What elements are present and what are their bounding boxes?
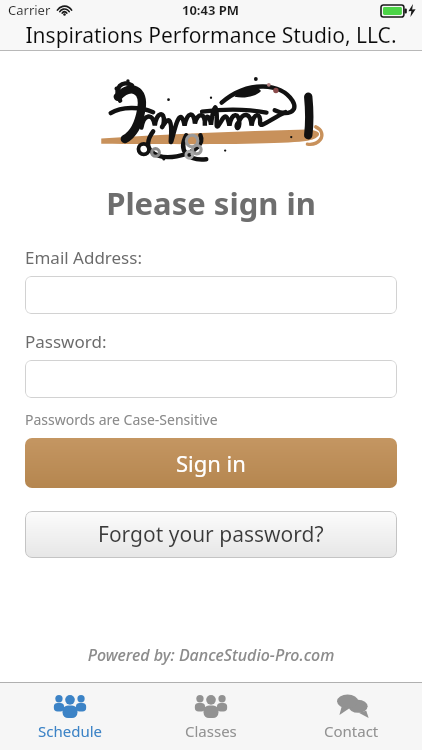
staticText: Powered by: DanceStudio-Pro.com xyxy=(0,644,422,666)
staticText: Inspirations Performance Studio, LLC. xyxy=(25,21,397,50)
staticText: Password: xyxy=(25,330,107,353)
staticText: Forgot your password? xyxy=(98,520,324,549)
button[interactable]: Forgot your password? xyxy=(25,511,397,558)
button[interactable] xyxy=(25,276,397,314)
button[interactable]: Schedule xyxy=(0,686,140,747)
button[interactable]: Classes xyxy=(140,686,281,747)
staticText: 10:43 PM xyxy=(182,1,240,19)
button[interactable] xyxy=(25,360,397,398)
staticText: Contact xyxy=(324,721,379,741)
staticText: Email Address: xyxy=(25,246,142,269)
staticText: Sign in xyxy=(176,448,246,478)
button[interactable]: Sign in xyxy=(25,438,397,488)
staticText: Passwords are Case-Sensitive xyxy=(25,410,218,429)
staticText: Carrier xyxy=(8,1,51,19)
button[interactable]: Contact xyxy=(281,686,422,747)
staticText: Schedule xyxy=(38,721,102,741)
staticText: Please sign in xyxy=(0,182,422,224)
staticText: Classes xyxy=(185,721,237,741)
